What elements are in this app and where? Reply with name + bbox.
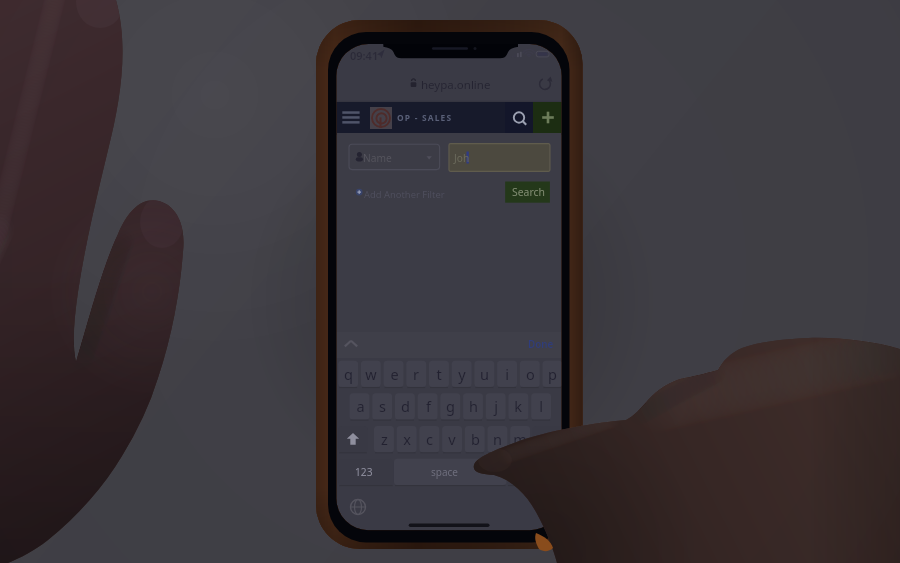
staticText: g [446,396,455,416]
staticText: d [401,396,410,416]
staticText: Name [363,151,392,165]
staticText: f [426,396,431,416]
staticText: b [471,429,480,449]
staticText: OP - SALES [397,112,453,123]
staticText: a [356,396,365,416]
staticText: w [365,364,377,384]
staticText: s [379,396,386,416]
button[interactable]: Add new [533,100,563,135]
staticText: l [539,396,543,416]
staticText: Search [512,185,545,199]
staticText: 09:41 [350,48,379,63]
staticText: Joh [454,151,470,165]
staticText: m [513,429,527,449]
button[interactable]: Change keyboard language [348,498,370,520]
staticText: 123 [355,465,373,479]
staticText: h [469,396,478,416]
staticText: r [413,364,419,384]
button[interactable]: Site security [404,69,434,91]
button[interactable]: Done [525,336,555,352]
staticText: c [426,429,433,449]
button[interactable]: Search [505,181,550,205]
staticText: z [381,429,388,449]
button[interactable]: Add Another Filter [352,183,440,203]
staticText: t [436,364,442,384]
staticText: x [403,429,411,449]
staticText: Add Another Filter [364,188,445,201]
staticText: space [431,465,458,479]
button[interactable]: Name filter [350,144,441,172]
staticText: j [494,396,498,416]
staticText: heypa.online [421,77,491,93]
staticText: Done [528,338,554,351]
button[interactable]: Search [505,100,533,135]
staticText: i [505,364,509,384]
staticText: e [390,364,399,384]
staticText: y [458,364,466,384]
button[interactable]: Reload page [536,73,558,95]
staticText: k [514,396,522,416]
staticText: q [344,364,353,384]
button[interactable]: Menu [341,107,363,127]
staticText: p [548,364,557,384]
button[interactable]: Search text field [449,143,551,173]
staticText: v [448,429,456,449]
button[interactable]: Hide keyboard [340,335,364,352]
staticText: n [493,429,502,449]
staticText: u [480,364,489,384]
staticText: o [526,364,535,384]
